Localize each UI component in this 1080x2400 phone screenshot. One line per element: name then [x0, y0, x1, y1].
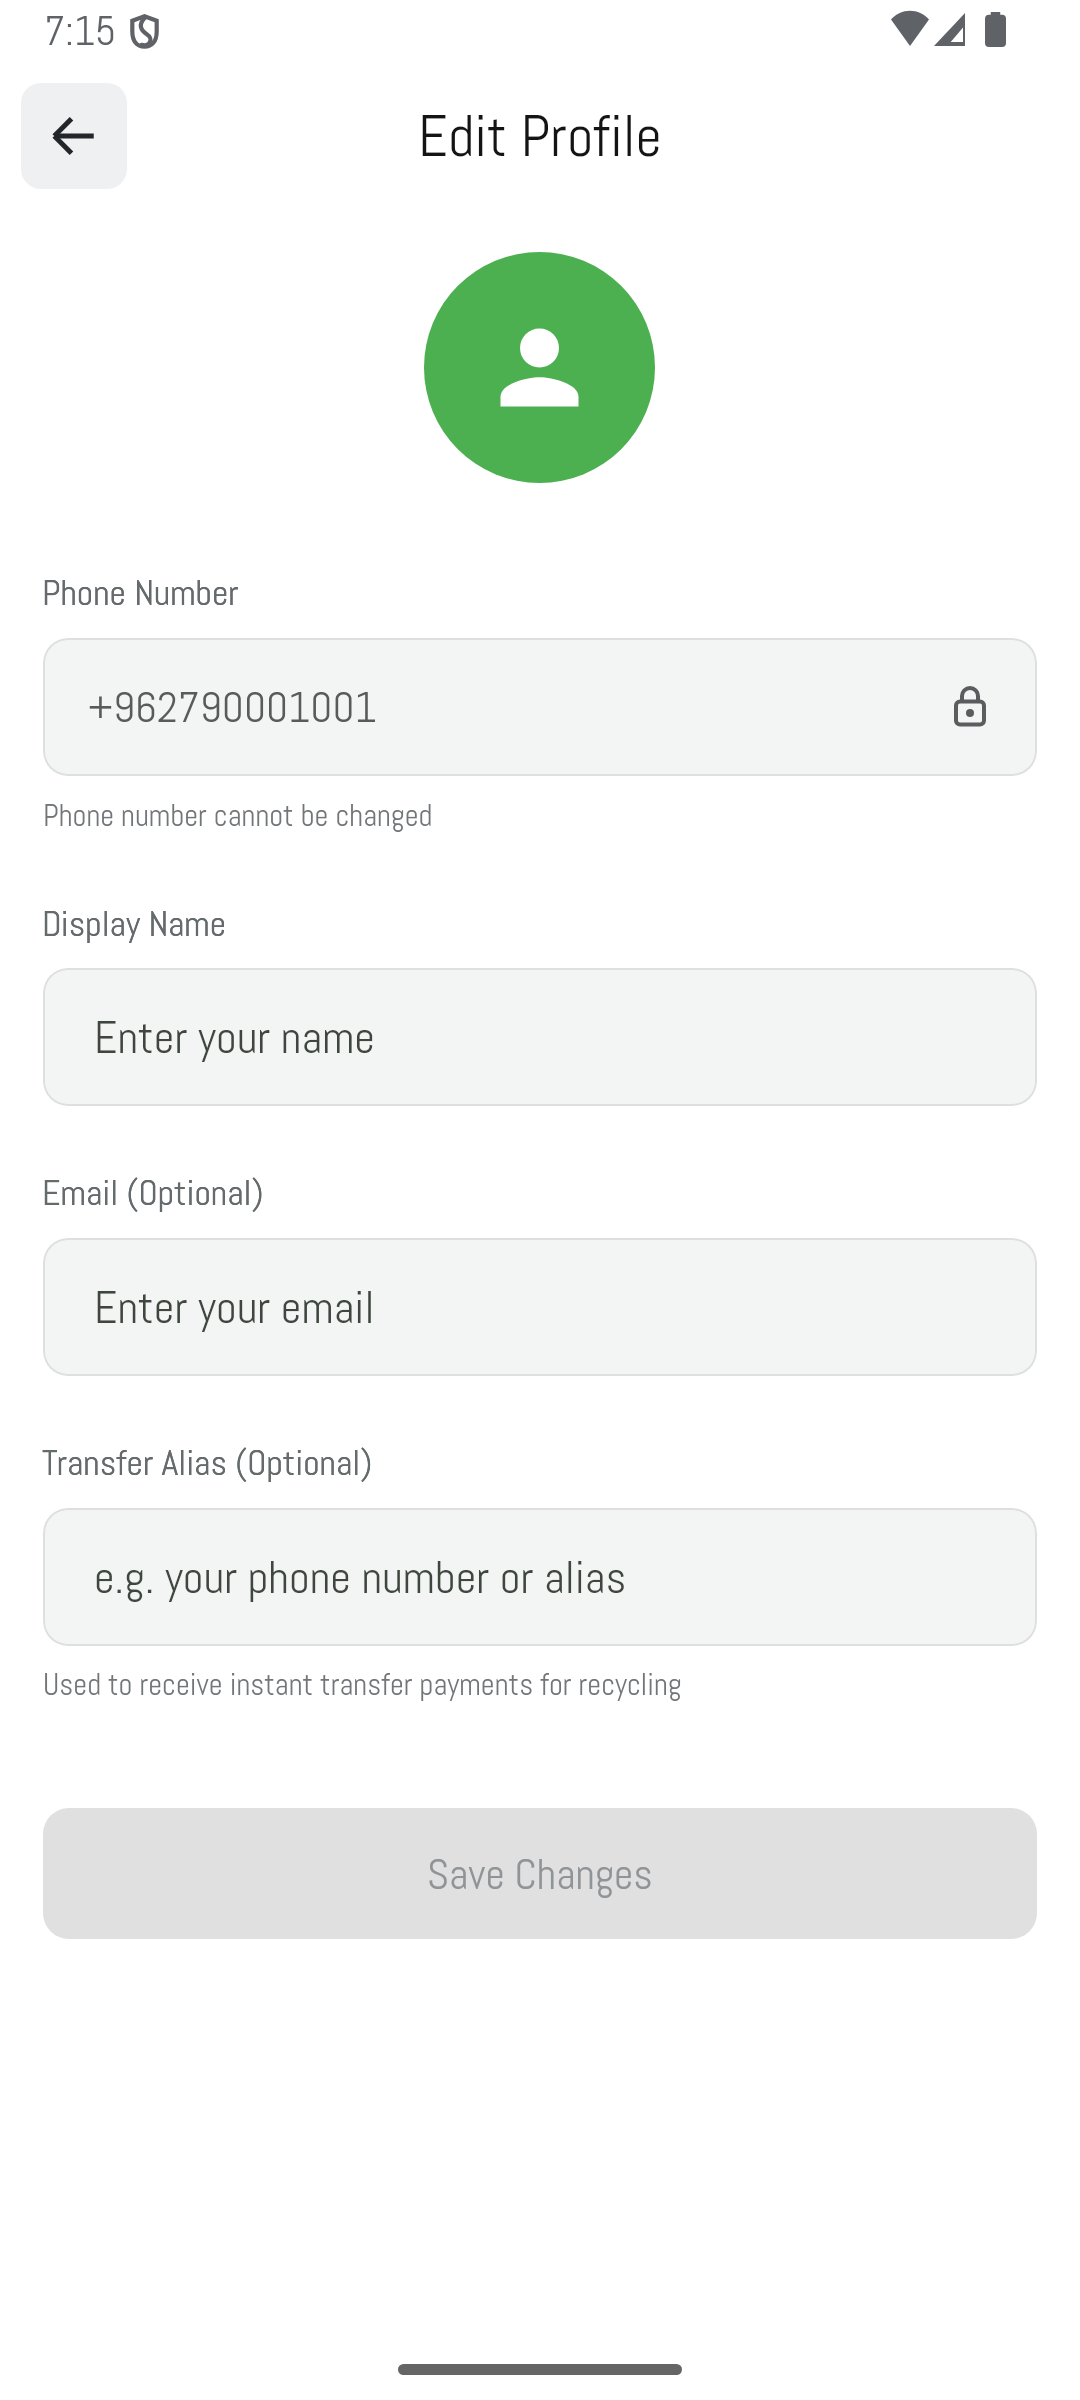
button[interactable]: Back: [21, 83, 127, 189]
staticText: Used to receive instant transfer payment…: [43, 1665, 682, 1704]
staticText: Phone Number: [42, 570, 239, 616]
staticText: Email (Optional): [42, 1170, 264, 1216]
staticText: Enter your name: [94, 1008, 376, 1066]
button[interactable]: Enter your name: [43, 968, 1037, 1106]
staticText: Display Name: [42, 901, 227, 947]
staticText: +962790001001: [88, 680, 377, 735]
staticText: Transfer Alias (Optional): [42, 1440, 373, 1486]
button[interactable]: Enter your email: [43, 1238, 1037, 1376]
staticText: Display Name: [42, 901, 227, 947]
staticText: Phone Number: [42, 570, 239, 616]
staticText: Edit Profile: [0, 99, 1080, 173]
staticText: Email (Optional): [42, 1170, 264, 1216]
staticText: e.g. your phone number or alias: [94, 1548, 627, 1606]
staticText: Phone number cannot be changed: [43, 796, 433, 835]
button[interactable]: Save Changes: [43, 1808, 1037, 1939]
button[interactable]: e.g. your phone number or alias: [43, 1508, 1037, 1646]
staticText: 7:15: [44, 5, 117, 57]
staticText: Transfer Alias (Optional): [42, 1440, 373, 1486]
staticText: Enter your email: [94, 1278, 375, 1336]
staticText: Save Changes: [427, 1847, 653, 1901]
button[interactable]: +962790001001: [43, 638, 1037, 776]
